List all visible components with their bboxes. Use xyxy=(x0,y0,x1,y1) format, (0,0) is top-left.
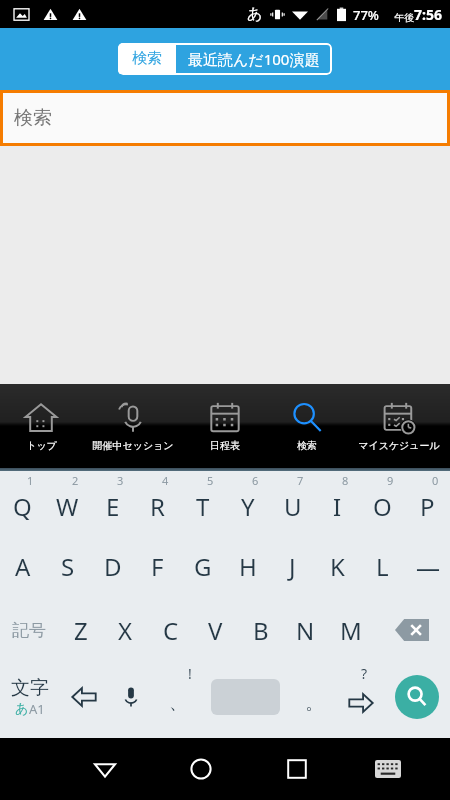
staticText: 4 xyxy=(162,473,169,488)
staticText: A xyxy=(15,550,31,583)
staticText: 。 xyxy=(305,692,323,715)
button[interactable]: Keyboard xyxy=(345,738,431,800)
button[interactable]: 8 xyxy=(315,471,360,534)
button[interactable]: 検索 xyxy=(0,90,450,146)
button[interactable]: Recents xyxy=(249,738,345,800)
staticText: ? xyxy=(361,664,368,683)
staticText: 最近読んだ100演題 xyxy=(188,49,320,69)
button[interactable]: 検索 xyxy=(118,43,176,74)
staticText: I xyxy=(333,490,342,523)
staticText: H xyxy=(239,550,257,583)
staticText: 7:56 xyxy=(414,5,442,24)
button[interactable]: 4 xyxy=(135,471,180,534)
button[interactable]: 記号 xyxy=(0,598,58,662)
button[interactable]: C xyxy=(148,598,193,662)
staticText: V xyxy=(208,614,223,647)
button[interactable]: A xyxy=(0,534,45,598)
button[interactable]: Home xyxy=(153,738,249,800)
staticText: — xyxy=(416,550,440,583)
button[interactable]: 最近読んだ100演題 xyxy=(176,43,332,75)
staticText: G xyxy=(194,550,212,583)
staticText: S xyxy=(61,550,75,583)
staticText: W xyxy=(56,490,79,523)
staticText: マイスケジュール xyxy=(358,439,440,452)
staticText: M xyxy=(340,614,362,647)
staticText: C xyxy=(163,614,179,647)
staticText: 7 xyxy=(297,473,304,488)
button[interactable]: V xyxy=(193,598,238,662)
staticText: トップ xyxy=(26,439,57,452)
button[interactable]: X xyxy=(103,598,148,662)
staticText: F xyxy=(151,550,164,583)
button[interactable]: Delete xyxy=(373,598,450,662)
staticText: 1 xyxy=(27,473,34,488)
button[interactable]: M xyxy=(328,598,373,662)
button[interactable]: 6 xyxy=(225,471,270,534)
button[interactable]: Back xyxy=(57,738,153,800)
button[interactable]: H xyxy=(225,534,270,598)
staticText: 3 xyxy=(117,473,124,488)
staticText: 開催中セッション xyxy=(92,439,174,452)
button[interactable]: 文字 xyxy=(0,662,60,732)
button[interactable]: Search xyxy=(384,662,450,732)
staticText: 文字 xyxy=(11,676,49,700)
staticText: K xyxy=(330,550,345,583)
staticText: L xyxy=(376,550,389,583)
staticText: J xyxy=(289,550,296,583)
button[interactable]: B xyxy=(238,598,283,662)
staticText: Y xyxy=(241,490,255,523)
button[interactable]: S xyxy=(45,534,90,598)
staticText: 、 xyxy=(169,692,187,715)
staticText: 日程表 xyxy=(210,439,240,452)
button[interactable]: L xyxy=(360,534,405,598)
button[interactable]: N xyxy=(283,598,328,662)
button[interactable]: 1 xyxy=(0,471,45,534)
button[interactable]: K xyxy=(315,534,360,598)
staticText: 0 xyxy=(432,473,439,488)
staticText: 検索 xyxy=(132,49,162,68)
staticText: N xyxy=(296,614,315,647)
staticText: P xyxy=(420,490,435,523)
staticText: 77% xyxy=(353,6,379,24)
button[interactable]: G xyxy=(180,534,225,598)
staticText: 検索 xyxy=(14,106,52,130)
staticText: 8 xyxy=(342,473,349,488)
button[interactable]: 7 xyxy=(270,471,315,534)
staticText: X xyxy=(118,614,133,647)
button[interactable]: 検索 xyxy=(266,384,348,468)
button[interactable]: 。 xyxy=(290,662,337,732)
button[interactable]: Left xyxy=(60,662,107,732)
staticText: B xyxy=(253,614,269,647)
staticText: Q xyxy=(13,490,32,523)
button[interactable]: D xyxy=(90,534,135,598)
staticText: 記号 xyxy=(12,620,46,641)
button[interactable]: ? xyxy=(337,662,384,732)
button[interactable]: 日程表 xyxy=(184,384,266,468)
button[interactable]: ! xyxy=(154,662,201,732)
button[interactable]: J xyxy=(270,534,315,598)
staticText: 2 xyxy=(72,473,79,488)
button[interactable]: 開催中セッション xyxy=(82,384,184,468)
button[interactable]: 2 xyxy=(45,471,90,534)
staticText: O xyxy=(373,490,392,523)
button[interactable]: 5 xyxy=(180,471,225,534)
staticText: 9 xyxy=(387,473,394,488)
button[interactable]: トップ xyxy=(0,384,82,468)
button[interactable]: — xyxy=(405,534,450,598)
staticText: R xyxy=(150,490,165,523)
button[interactable]: Voice input xyxy=(107,662,154,732)
staticText: Z xyxy=(74,614,88,647)
button[interactable]: 3 xyxy=(90,471,135,534)
staticText: T xyxy=(196,490,210,523)
button[interactable]: Space xyxy=(201,662,290,732)
staticText: ! xyxy=(188,664,192,683)
button[interactable]: 0 xyxy=(405,471,450,534)
staticText: D xyxy=(104,550,122,583)
staticText: 午後 xyxy=(394,11,414,24)
button[interactable]: 9 xyxy=(360,471,405,534)
button[interactable]: マイスケジュール xyxy=(348,384,450,468)
staticText: あ xyxy=(15,700,29,716)
staticText: A1 xyxy=(29,700,45,718)
button[interactable]: F xyxy=(135,534,180,598)
button[interactable]: Z xyxy=(58,598,103,662)
